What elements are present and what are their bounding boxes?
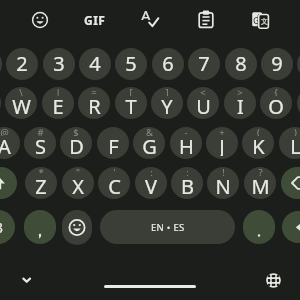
staticText: ? bbox=[258, 167, 263, 176]
staticText: G bbox=[253, 14, 260, 24]
button[interactable]: # bbox=[24, 127, 56, 159]
button[interactable]: \ bbox=[5, 87, 37, 119]
button[interactable]: : bbox=[135, 167, 167, 199]
button[interactable]: 1 bbox=[0, 48, 2, 80]
button[interactable]: { bbox=[260, 87, 292, 119]
staticText: 8 bbox=[235, 50, 247, 77]
button[interactable]: $ bbox=[60, 127, 92, 159]
button[interactable]: 9 bbox=[261, 48, 293, 80]
staticText: A bbox=[0, 133, 11, 156]
staticText: N bbox=[215, 173, 231, 196]
button[interactable]: " bbox=[62, 167, 94, 199]
staticText: D bbox=[69, 133, 84, 156]
button[interactable]: } bbox=[297, 87, 300, 119]
button[interactable]: 8 bbox=[225, 48, 257, 80]
button[interactable]: ! bbox=[207, 167, 239, 199]
staticText: J bbox=[219, 133, 225, 156]
staticText: + bbox=[219, 127, 225, 136]
button[interactable]: @ bbox=[0, 127, 20, 159]
button[interactable]: > bbox=[224, 87, 256, 119]
button[interactable]: Spell check bbox=[133, 2, 169, 38]
staticText: : bbox=[150, 167, 153, 176]
button[interactable]: ( bbox=[242, 127, 274, 159]
button[interactable]: - bbox=[170, 127, 202, 159]
staticText: | bbox=[55, 87, 61, 96]
staticText: ! bbox=[222, 167, 225, 176]
staticText: I bbox=[237, 93, 244, 116]
staticText: S bbox=[35, 133, 46, 156]
button[interactable]: Clipboard bbox=[188, 1, 224, 37]
staticText: ( bbox=[257, 127, 260, 136]
staticText: W bbox=[12, 93, 31, 116]
staticText: L bbox=[290, 133, 300, 156]
button[interactable]: | bbox=[42, 87, 74, 119]
staticText: { bbox=[274, 87, 278, 96]
button[interactable]: & bbox=[133, 127, 165, 159]
button[interactable]: _ bbox=[97, 127, 129, 159]
staticText: EN • ES bbox=[151, 221, 185, 234]
staticText: 7 bbox=[198, 50, 210, 77]
staticText: G bbox=[142, 133, 157, 156]
staticText: V bbox=[145, 173, 157, 196]
button[interactable]: 2 bbox=[6, 48, 38, 80]
button[interactable]: Emoji bbox=[62, 210, 92, 245]
staticText: E bbox=[52, 93, 64, 116]
button[interactable]: ; bbox=[171, 167, 203, 199]
staticText: A bbox=[141, 5, 151, 20]
button[interactable]: GIF bbox=[77, 2, 113, 38]
button[interactable]: 3 bbox=[43, 48, 75, 80]
staticText: B bbox=[181, 173, 194, 196]
button[interactable]: % bbox=[0, 87, 1, 119]
staticText: ; bbox=[186, 167, 189, 176]
button[interactable]: Emoji bbox=[22, 2, 58, 38]
staticText: ?123 bbox=[0, 218, 4, 237]
staticText: X bbox=[72, 173, 84, 196]
button[interactable]: Shift bbox=[0, 167, 17, 199]
staticText: 5 bbox=[125, 50, 137, 77]
staticText: ] bbox=[165, 87, 169, 96]
staticText: ' bbox=[113, 167, 116, 176]
staticText: T bbox=[125, 93, 137, 116]
staticText: M bbox=[251, 173, 270, 196]
button[interactable]: ? bbox=[244, 167, 276, 199]
button[interactable]: < bbox=[187, 87, 219, 119]
staticText: H bbox=[179, 133, 194, 156]
staticText: 2 bbox=[16, 50, 28, 77]
button[interactable]: Comma bbox=[24, 210, 56, 244]
staticText: 3 bbox=[53, 50, 65, 77]
button[interactable]: ?123 bbox=[0, 210, 15, 244]
staticText: U bbox=[196, 93, 211, 116]
button[interactable]: Change language bbox=[257, 264, 290, 297]
button[interactable]: * bbox=[25, 167, 57, 199]
staticText: " bbox=[76, 167, 80, 176]
staticText: \ bbox=[19, 87, 23, 96]
button[interactable]: Enter bbox=[282, 211, 300, 243]
staticText: 6 bbox=[162, 50, 174, 77]
button[interactable]: 6 bbox=[152, 48, 184, 80]
staticText: [ bbox=[129, 87, 133, 96]
staticText: < bbox=[200, 87, 206, 96]
button[interactable]: Translate bbox=[243, 4, 277, 36]
button[interactable]: = bbox=[78, 87, 110, 119]
staticText: Y bbox=[161, 93, 173, 116]
button[interactable]: Hide keyboard bbox=[10, 263, 43, 296]
button[interactable]: 0 bbox=[297, 48, 300, 80]
button[interactable]: + bbox=[206, 127, 238, 159]
button[interactable]: EN • ES bbox=[100, 210, 235, 244]
button[interactable]: ] bbox=[151, 87, 183, 119]
staticText: 文 bbox=[261, 17, 268, 25]
button[interactable]: [ bbox=[115, 87, 147, 119]
button[interactable]: ' bbox=[98, 167, 130, 199]
button[interactable]: Backspace bbox=[281, 167, 300, 199]
button[interactable]: Period bbox=[243, 210, 275, 244]
staticText: ) bbox=[294, 127, 297, 136]
staticText: R bbox=[88, 93, 101, 116]
staticText: > bbox=[237, 87, 243, 96]
button[interactable]: 7 bbox=[188, 48, 220, 80]
staticText: & bbox=[146, 127, 153, 136]
button[interactable]: 4 bbox=[79, 48, 111, 80]
button[interactable]: ) bbox=[279, 127, 300, 159]
button[interactable]: 5 bbox=[115, 48, 147, 80]
staticText: = bbox=[91, 87, 97, 96]
